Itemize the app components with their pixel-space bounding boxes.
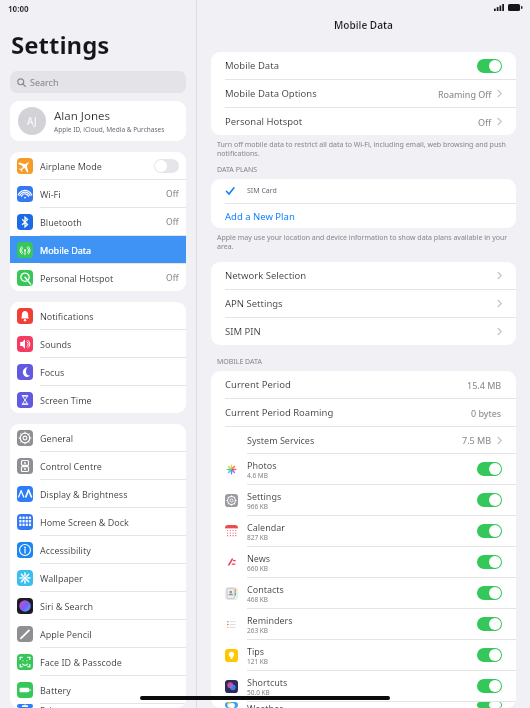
staticText: Roaming Off xyxy=(438,88,492,100)
button[interactable]: Add a New Plan xyxy=(211,204,516,228)
staticText: Calendar xyxy=(247,521,285,533)
button[interactable]: News xyxy=(211,547,516,577)
button[interactable]: Mobile Data xyxy=(211,52,516,79)
staticText: Airplane Mode xyxy=(40,160,154,172)
button[interactable]: Search xyxy=(10,71,186,93)
staticText: Tips xyxy=(247,645,265,657)
button[interactable]: Toggle xyxy=(477,617,502,631)
button[interactable]: Face ID & Passcode xyxy=(10,648,186,675)
button[interactable]: Toggle xyxy=(477,586,502,600)
staticText: APN Settings xyxy=(225,297,497,310)
button[interactable]: Settings xyxy=(211,485,516,515)
button[interactable]: General xyxy=(10,424,186,451)
staticText: 966 KB xyxy=(247,502,269,511)
staticText: Off xyxy=(166,272,179,284)
staticText: Wallpaper xyxy=(40,572,179,584)
button[interactable]: Toggle xyxy=(477,493,502,507)
staticText: MOBILE DATA xyxy=(217,357,262,367)
staticText: Personal Hotspot xyxy=(40,272,166,284)
staticText: Face ID & Passcode xyxy=(40,656,179,668)
staticText: 0 bytes xyxy=(471,407,502,419)
staticText: System Services xyxy=(247,434,462,446)
button[interactable]: Toggle xyxy=(477,555,502,569)
staticText: Accessibility xyxy=(40,544,179,556)
button[interactable]: Photos xyxy=(211,454,516,484)
button[interactable]: Mobile Data Options xyxy=(211,80,516,107)
staticText: Current Period Roaming xyxy=(225,406,471,419)
staticText: Apple may use your location and device i… xyxy=(217,233,514,251)
button[interactable]: Toggle xyxy=(477,702,502,708)
button[interactable]: Sounds xyxy=(10,330,186,357)
staticText: Wi-Fi xyxy=(40,188,166,200)
staticText: Off xyxy=(166,188,179,200)
staticText: Shortcuts xyxy=(247,676,288,688)
staticText: 4.6 MB xyxy=(247,471,268,480)
button[interactable]: Shortcuts xyxy=(211,671,516,701)
button[interactable]: SIM Card xyxy=(211,179,516,203)
button[interactable]: Bluetooth xyxy=(10,208,186,235)
button[interactable]: Network Selection xyxy=(211,262,516,289)
button[interactable]: Weather xyxy=(211,702,516,708)
staticText: AJ xyxy=(27,114,37,128)
button[interactable]: Control Centre xyxy=(10,452,186,479)
button[interactable]: Contacts xyxy=(211,578,516,608)
staticText: Screen Time xyxy=(40,394,179,406)
staticText: Add a New Plan xyxy=(225,210,295,223)
staticText: Display & Brightness xyxy=(40,488,179,500)
staticText: Home Screen & Dock xyxy=(40,516,179,528)
button[interactable]: AJ xyxy=(10,101,186,141)
button[interactable]: Accessibility xyxy=(10,536,186,563)
button[interactable]: Toggle xyxy=(477,648,502,662)
staticText: Settings xyxy=(11,28,110,61)
staticText: SIM PIN xyxy=(225,325,497,338)
button[interactable]: Current Period xyxy=(211,371,516,398)
staticText: 121 KB xyxy=(247,657,269,666)
staticText: Off xyxy=(478,116,492,128)
staticText: Mobile Data xyxy=(40,244,179,256)
staticText: Personal Hotspot xyxy=(225,115,478,128)
button[interactable]: Toggle xyxy=(477,679,502,693)
staticText: Mobile Data xyxy=(334,18,393,32)
staticText: Mobile Data xyxy=(225,59,477,72)
button[interactable]: Toggle xyxy=(477,59,502,73)
staticText: Turn off mobile data to restrict all dat… xyxy=(217,140,506,158)
button[interactable]: Home Screen & Dock xyxy=(10,508,186,535)
staticText: 50.0 KB xyxy=(247,688,270,697)
button[interactable]: Reminders xyxy=(211,609,516,639)
staticText: Contacts xyxy=(247,583,284,595)
button[interactable]: Toggle xyxy=(154,159,179,173)
button[interactable]: Battery xyxy=(10,676,186,703)
staticText: Network Selection xyxy=(225,269,497,282)
button[interactable]: Apple Pencil xyxy=(10,620,186,647)
button[interactable]: SIM PIN xyxy=(211,318,516,345)
button[interactable]: Personal Hotspot xyxy=(10,264,186,291)
button[interactable]: Display & Brightness xyxy=(10,480,186,507)
staticText: Battery xyxy=(40,684,179,696)
staticText: Weather xyxy=(247,702,283,708)
staticText: 827 KB xyxy=(247,533,269,542)
button[interactable]: Personal Hotspot xyxy=(211,108,516,135)
button[interactable]: Wi-Fi xyxy=(10,180,186,207)
staticText: 10:00 xyxy=(8,3,29,14)
button[interactable]: Privacy xyxy=(10,704,186,708)
button[interactable]: Toggle xyxy=(477,462,502,476)
button[interactable]: Mobile Data xyxy=(10,236,186,263)
button[interactable]: Focus xyxy=(10,358,186,385)
button[interactable]: Toggle xyxy=(477,524,502,538)
staticText: News xyxy=(247,552,271,564)
button[interactable]: Calendar xyxy=(211,516,516,546)
button[interactable]: Current Period Roaming xyxy=(211,399,516,426)
button[interactable]: System Services xyxy=(211,427,516,453)
button[interactable]: APN Settings xyxy=(211,290,516,317)
staticText: Control Centre xyxy=(40,460,179,472)
staticText: Search xyxy=(30,76,59,88)
button[interactable]: Wallpaper xyxy=(10,564,186,591)
staticText: Privacy xyxy=(40,704,179,708)
button[interactable]: Airplane Mode xyxy=(10,152,186,179)
staticText: Alan Jones xyxy=(54,108,111,124)
button[interactable]: Siri & Search xyxy=(10,592,186,619)
button[interactable]: Screen Time xyxy=(10,386,186,413)
staticText: 7.5 MB xyxy=(462,434,492,446)
button[interactable]: Tips xyxy=(211,640,516,670)
button[interactable]: Notifications xyxy=(10,302,186,329)
